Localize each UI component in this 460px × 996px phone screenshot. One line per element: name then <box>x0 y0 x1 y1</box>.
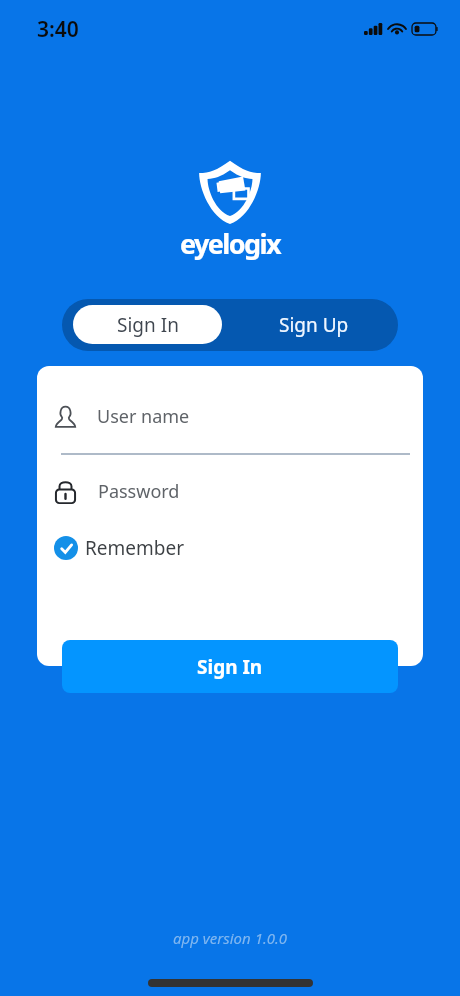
staticText: Remember <box>85 535 185 561</box>
button[interactable]: Remember <box>54 530 185 566</box>
staticText: Sign Up <box>279 312 349 338</box>
button[interactable]: User name <box>37 397 423 435</box>
button[interactable]: Sign In <box>62 640 398 693</box>
button[interactable]: Sign In <box>73 305 222 344</box>
button[interactable]: Sign Up <box>230 299 398 351</box>
staticText: User name <box>97 404 190 429</box>
staticText: eyelogix <box>180 225 280 262</box>
staticText: Password <box>98 479 180 504</box>
staticText: Sign In <box>197 654 263 680</box>
staticText: Sign In <box>117 312 179 338</box>
button[interactable]: Password <box>37 472 423 510</box>
staticText: 3:40 <box>37 15 79 44</box>
staticText: app version 1.0.0 <box>173 928 288 948</box>
